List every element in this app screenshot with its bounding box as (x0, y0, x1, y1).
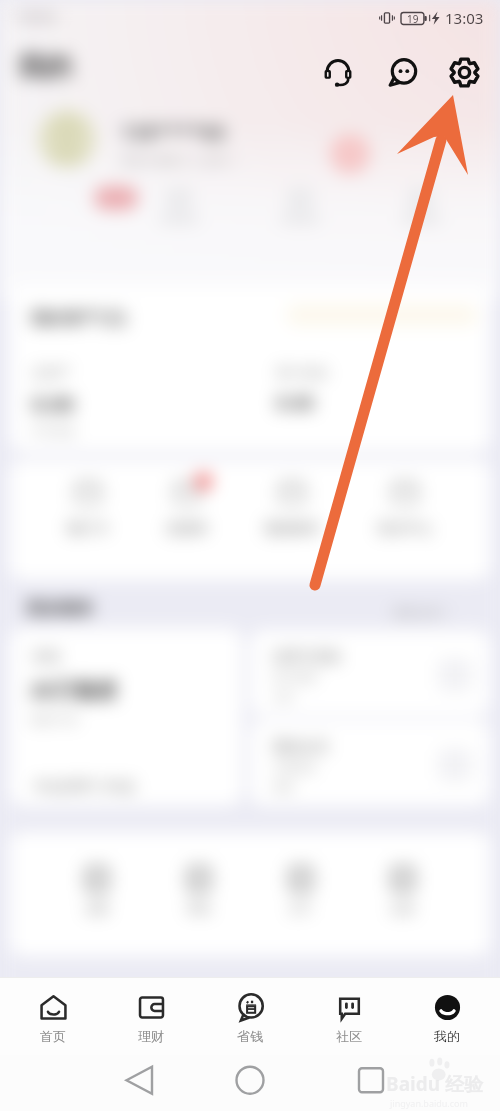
staticText: 优惠券 (166, 520, 208, 538)
staticText: 安全中心 (377, 520, 433, 538)
button[interactable]: Customer service (316, 50, 360, 94)
staticText: 0.00 (276, 390, 314, 416)
staticText: 省钱 (237, 1028, 263, 1044)
button[interactable]: 首页 (7, 992, 99, 1044)
staticText: Baidu 经验 (386, 1071, 483, 1097)
staticText: 理财 (138, 1028, 164, 1044)
button[interactable]: 我的 (401, 992, 493, 1044)
staticText: 19 (407, 12, 419, 26)
staticText: 年化利率7.2%起 (34, 776, 136, 795)
staticText: 设置 (85, 901, 109, 916)
staticText: 我的会员 (272, 738, 328, 756)
staticText: 0.00 (32, 390, 74, 419)
staticText: 我的账单 (264, 520, 320, 538)
staticText: 社区 (336, 1028, 362, 1044)
staticText: 我的 (18, 50, 72, 84)
staticText: 专属权益 (272, 760, 316, 774)
staticText: 138****66 (120, 118, 226, 147)
staticText: jingyan.baidu.com (390, 1097, 468, 1109)
staticText: 我的资产(元) (30, 306, 127, 329)
staticText: 首页 (40, 1028, 66, 1044)
staticText: 20万额度 (30, 676, 118, 705)
staticText: 银行卡 (67, 520, 109, 538)
button[interactable]: 社区 (303, 992, 395, 1044)
staticText: 我的 (434, 1028, 460, 1044)
button[interactable]: Settings (442, 50, 486, 94)
staticText: 更多服务 (26, 598, 94, 619)
staticText: 借钱 (32, 648, 60, 666)
button[interactable]: 省钱 (204, 992, 296, 1044)
staticText: 13:03 (445, 8, 484, 28)
staticText: 信用卡还款 (272, 648, 342, 666)
button[interactable]: 理财 (105, 992, 197, 1044)
staticText: 帮助 (187, 901, 211, 916)
button[interactable]: Messages (380, 50, 424, 94)
